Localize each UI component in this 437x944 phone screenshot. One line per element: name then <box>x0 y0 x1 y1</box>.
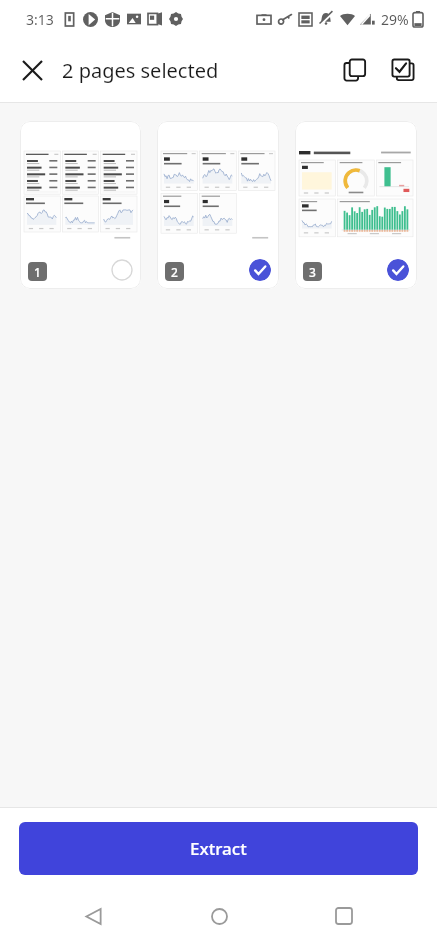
staticText: 2 <box>171 264 178 280</box>
button[interactable]: Not selected <box>111 259 133 281</box>
button[interactable]: 3 <box>295 121 417 289</box>
button[interactable]: 1 <box>20 121 141 289</box>
staticText: 1 <box>34 264 41 280</box>
button[interactable]: 2 <box>157 121 279 289</box>
button[interactable]: Selected <box>387 259 409 281</box>
button[interactable]: Recent apps <box>312 888 376 944</box>
staticText: Extract <box>190 837 247 860</box>
staticText: 3:13 <box>26 10 54 29</box>
button[interactable]: Copy <box>331 46 379 94</box>
staticText: 29% <box>381 10 409 29</box>
staticText: 3 <box>309 264 316 280</box>
staticText: 2 pages selected <box>62 57 219 84</box>
button[interactable]: Select all <box>379 46 427 94</box>
button[interactable]: Back <box>61 888 125 944</box>
button[interactable]: Selected <box>249 259 271 281</box>
button[interactable]: Home <box>187 888 251 944</box>
button[interactable]: Extract <box>19 822 418 875</box>
button[interactable]: Close <box>8 46 56 94</box>
